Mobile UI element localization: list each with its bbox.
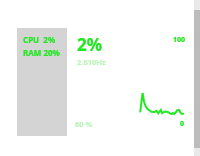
button[interactable]: CPU load 2 percent, 2.810 Hz [74, 31, 110, 67]
staticText: RAM 20% [23, 47, 60, 58]
staticText: 2.810Hz [77, 57, 106, 67]
other: CPU usage history graph [137, 92, 185, 116]
staticText: 2% [77, 33, 103, 56]
staticText: 100 [173, 35, 186, 45]
staticText: 0 [180, 119, 185, 129]
button[interactable]: System stats panel: CPU 2%, RAM 20% [17, 28, 67, 136]
staticText: 60 % [75, 119, 93, 129]
staticText: CPU 2% [23, 34, 56, 45]
